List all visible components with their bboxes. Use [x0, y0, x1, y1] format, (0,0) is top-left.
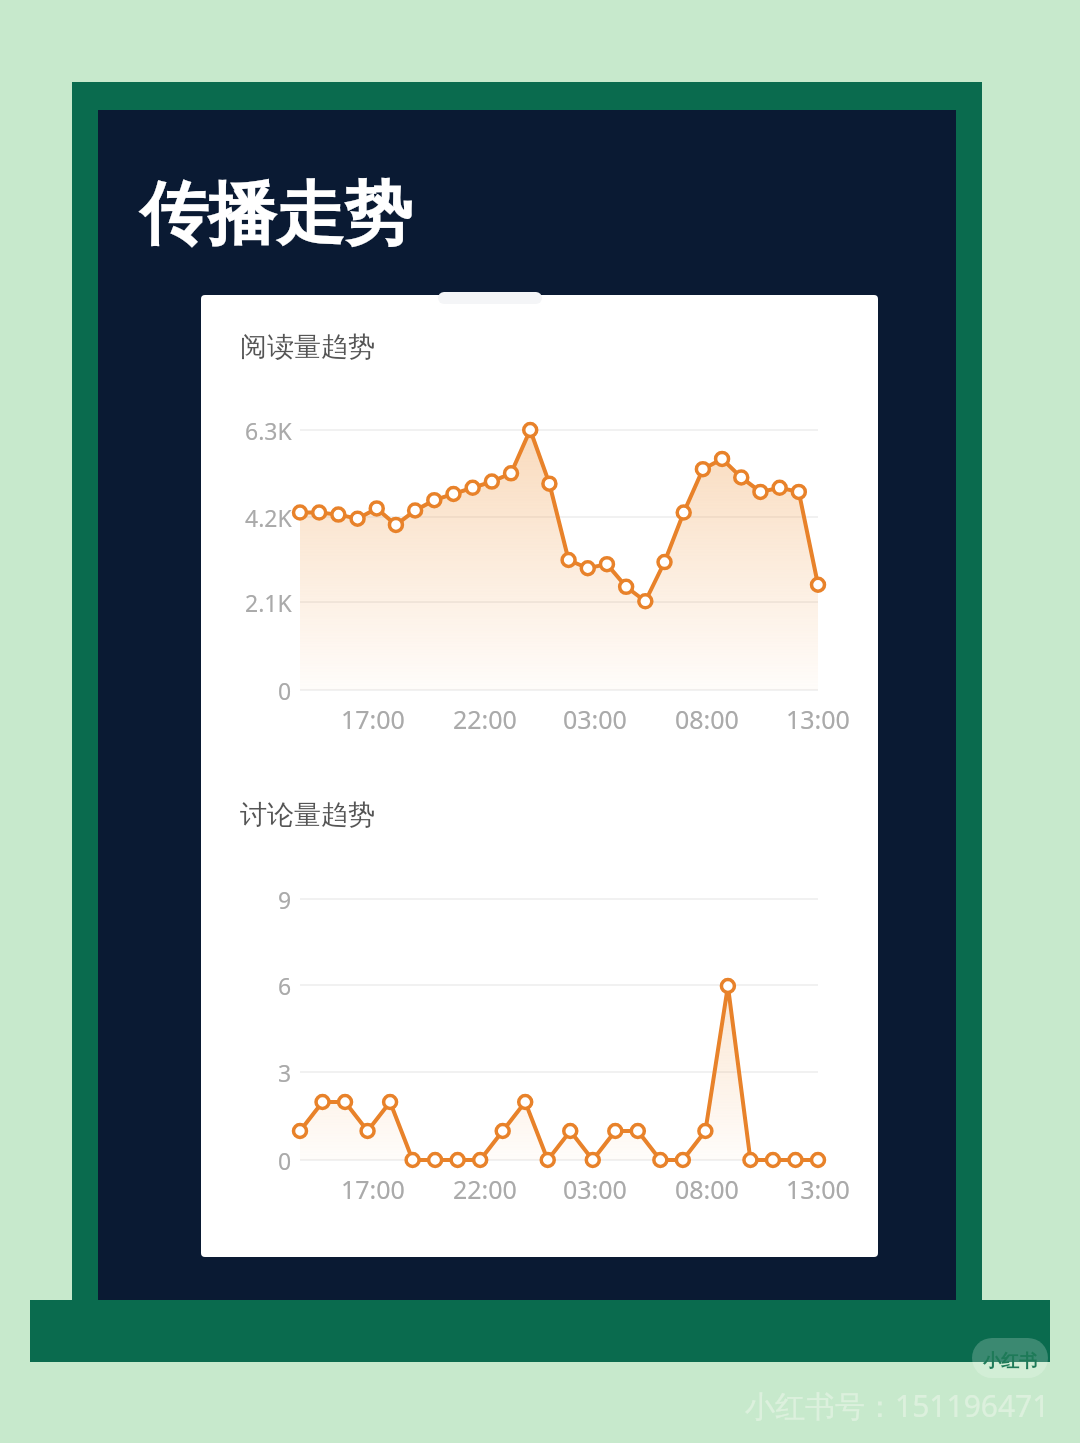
- button[interactable]: 传播走势 infographic: [0, 0, 1080, 1443]
